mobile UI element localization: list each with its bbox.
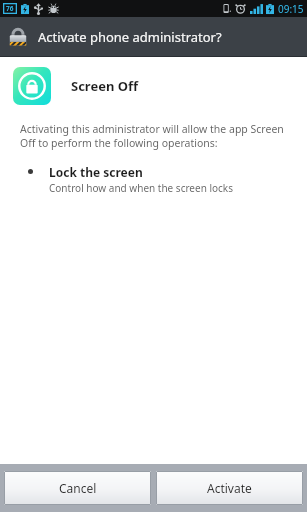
staticText: Cancel (59, 480, 97, 496)
button[interactable]: Activate (156, 471, 303, 505)
staticText: Activate (207, 480, 252, 496)
staticText: Screen Off (71, 77, 139, 95)
button[interactable]: Cancel (4, 471, 151, 505)
staticText: Control how and when the screen locks (49, 181, 233, 195)
staticText: Activating this administrator will allow… (20, 122, 293, 150)
staticText: 09:15 (278, 2, 304, 16)
other: Device administrator lock (8, 26, 28, 49)
staticText: Lock the screen (49, 164, 143, 180)
staticText: Activate phone administrator? (38, 28, 222, 46)
staticText: 76 (6, 4, 14, 13)
